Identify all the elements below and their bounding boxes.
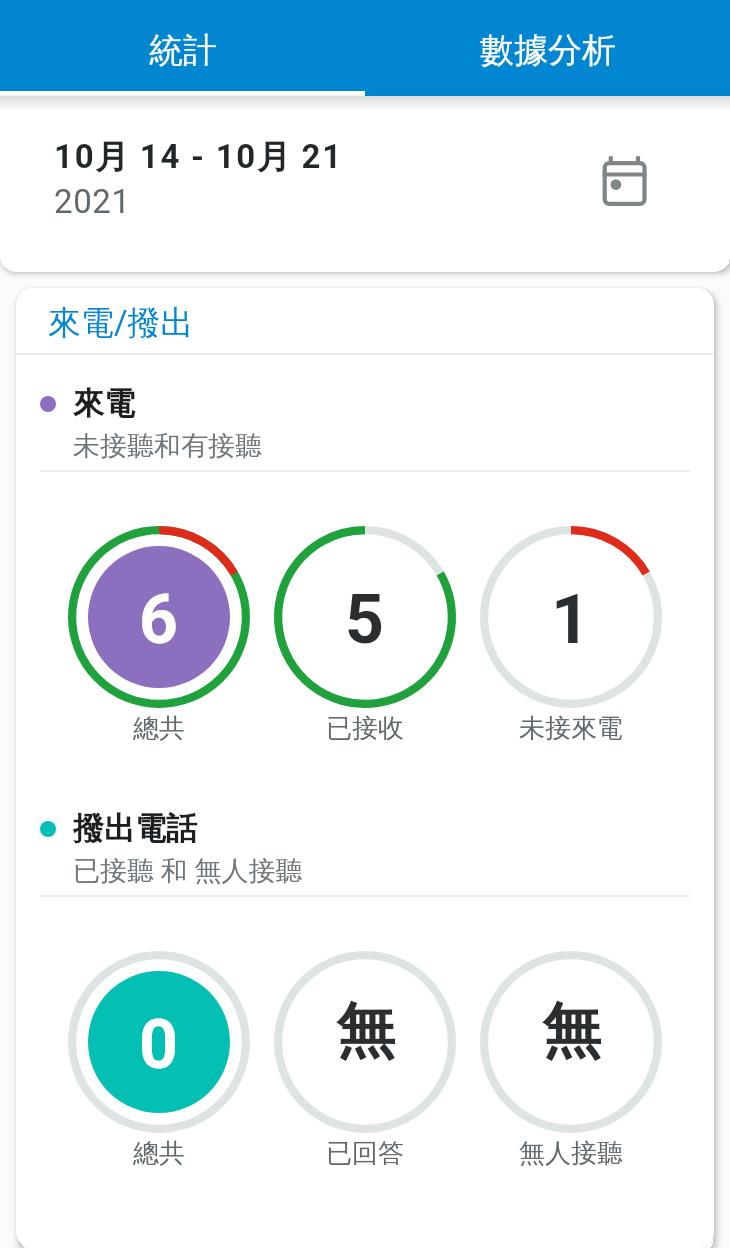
button[interactable]: 1: [480, 526, 662, 745]
staticText: 未接聽和有接聽: [73, 429, 262, 463]
staticText: 總共: [133, 1137, 185, 1170]
staticText: 2021: [54, 182, 131, 221]
staticText: 已回答: [326, 1137, 404, 1170]
button[interactable]: Select date range: [600, 154, 647, 209]
button[interactable]: 數據分析: [365, 0, 730, 96]
button[interactable]: 統計: [0, 0, 365, 96]
button[interactable]: 無: [274, 951, 456, 1170]
staticText: 5: [345, 580, 385, 660]
staticText: 未接來電: [519, 712, 623, 745]
staticText: 0: [139, 1005, 179, 1085]
button[interactable]: 10月 14 - 10月 21: [0, 96, 730, 272]
staticText: 撥出電話: [73, 809, 197, 848]
staticText: 已接聽 和 無人接聽: [73, 854, 303, 888]
staticText: 無: [542, 994, 601, 1068]
staticText: 無人接聽: [519, 1137, 623, 1170]
button[interactable]: 6: [68, 526, 250, 745]
button[interactable]: 0: [68, 951, 250, 1170]
staticText: 無: [336, 994, 395, 1068]
staticText: 數據分析: [480, 29, 616, 72]
staticText: 來電/撥出: [48, 302, 194, 344]
staticText: 已接收: [326, 712, 404, 745]
button[interactable]: 5: [274, 526, 456, 745]
staticText: 總共: [133, 712, 185, 745]
staticText: 6: [139, 580, 179, 660]
staticText: 來電: [73, 384, 135, 423]
staticText: 10月 14 - 10月 21: [54, 136, 343, 178]
staticText: 1: [551, 580, 591, 660]
staticText: 統計: [149, 29, 217, 72]
button[interactable]: 無: [480, 951, 662, 1170]
